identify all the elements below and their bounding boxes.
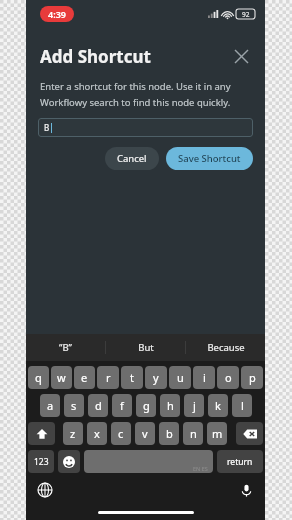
button[interactable]: Backspace (236, 422, 263, 445)
staticText: s (71, 398, 77, 413)
button[interactable]: o (217, 366, 239, 389)
staticText: b (166, 426, 173, 441)
button[interactable]: return (217, 450, 263, 473)
staticText: x (94, 426, 100, 441)
staticText: e (81, 370, 88, 385)
button[interactable]: f (112, 394, 132, 417)
button[interactable]: b (159, 422, 179, 445)
button[interactable]: t (121, 366, 143, 389)
staticText: 4:39 (48, 8, 66, 20)
button[interactable]: e (74, 366, 95, 389)
button[interactable]: z (63, 422, 83, 445)
button[interactable]: s (64, 394, 84, 417)
button[interactable]: u (169, 366, 191, 389)
staticText: Enter a shortcut for this node. Use it i… (40, 80, 231, 93)
button[interactable]: Cancel (105, 147, 159, 170)
button[interactable]: Change keyboard (34, 479, 56, 501)
staticText: Cancel (117, 152, 147, 165)
staticText: f (120, 398, 124, 413)
button[interactable]: r (97, 366, 119, 389)
staticText: Add Shortcut (40, 45, 151, 68)
staticText: return (227, 456, 253, 468)
staticText: z (70, 426, 76, 441)
button[interactable]: B (38, 118, 253, 137)
button[interactable]: q (28, 366, 49, 389)
staticText: k (215, 398, 221, 413)
staticText: h (167, 398, 174, 413)
button[interactable]: w (51, 366, 72, 389)
staticText: l (241, 398, 244, 413)
button[interactable]: EN ES (84, 450, 213, 473)
button[interactable]: d (88, 394, 108, 417)
button[interactable]: a (40, 394, 60, 417)
staticText: g (143, 398, 150, 413)
staticText: m (212, 426, 223, 441)
staticText: j (193, 398, 196, 413)
button[interactable]: j (184, 394, 204, 417)
staticText: u (177, 370, 184, 385)
button[interactable]: But (106, 334, 185, 361)
button[interactable]: k (208, 394, 228, 417)
button[interactable]: m (207, 422, 227, 445)
staticText: q (35, 370, 42, 385)
staticText: c (118, 426, 124, 441)
button[interactable]: Dictation (235, 479, 257, 501)
staticText: t (130, 370, 134, 385)
staticText: “B” (59, 341, 72, 354)
button[interactable]: l (232, 394, 252, 417)
staticText: y (153, 370, 159, 385)
button[interactable]: c (111, 422, 131, 445)
staticText: d (95, 398, 102, 413)
button[interactable]: v (135, 422, 155, 445)
button[interactable]: i (193, 366, 215, 389)
staticText: r (106, 370, 111, 385)
button[interactable]: “B” (26, 334, 105, 361)
staticText: Save Shortcut (178, 152, 241, 165)
staticText: a (47, 398, 54, 413)
staticText: 92 (242, 10, 250, 19)
staticText: o (225, 370, 232, 385)
staticText: v (142, 426, 148, 441)
button[interactable]: Emoji (58, 450, 80, 473)
button[interactable]: 123 (28, 450, 54, 473)
button[interactable]: y (145, 366, 167, 389)
staticText: B (44, 122, 50, 133)
staticText: p (249, 370, 256, 385)
staticText: But (138, 341, 154, 354)
button[interactable]: n (183, 422, 203, 445)
button[interactable]: Save Shortcut (166, 147, 253, 170)
button[interactable]: 4:39 (40, 6, 74, 22)
button[interactable]: p (241, 366, 263, 389)
staticText: w (57, 370, 66, 385)
staticText: Because (207, 341, 245, 354)
button[interactable]: x (87, 422, 107, 445)
button[interactable]: g (136, 394, 156, 417)
button[interactable]: Because (186, 334, 265, 361)
button[interactable]: h (160, 394, 180, 417)
button[interactable]: Shift (28, 422, 55, 445)
staticText: Workflowy search to find this node quick… (40, 96, 231, 109)
staticText: EN ES (193, 465, 208, 472)
staticText: i (203, 370, 206, 385)
staticText: 123 (34, 456, 49, 468)
staticText: n (190, 426, 197, 441)
button[interactable]: Close (227, 42, 255, 70)
